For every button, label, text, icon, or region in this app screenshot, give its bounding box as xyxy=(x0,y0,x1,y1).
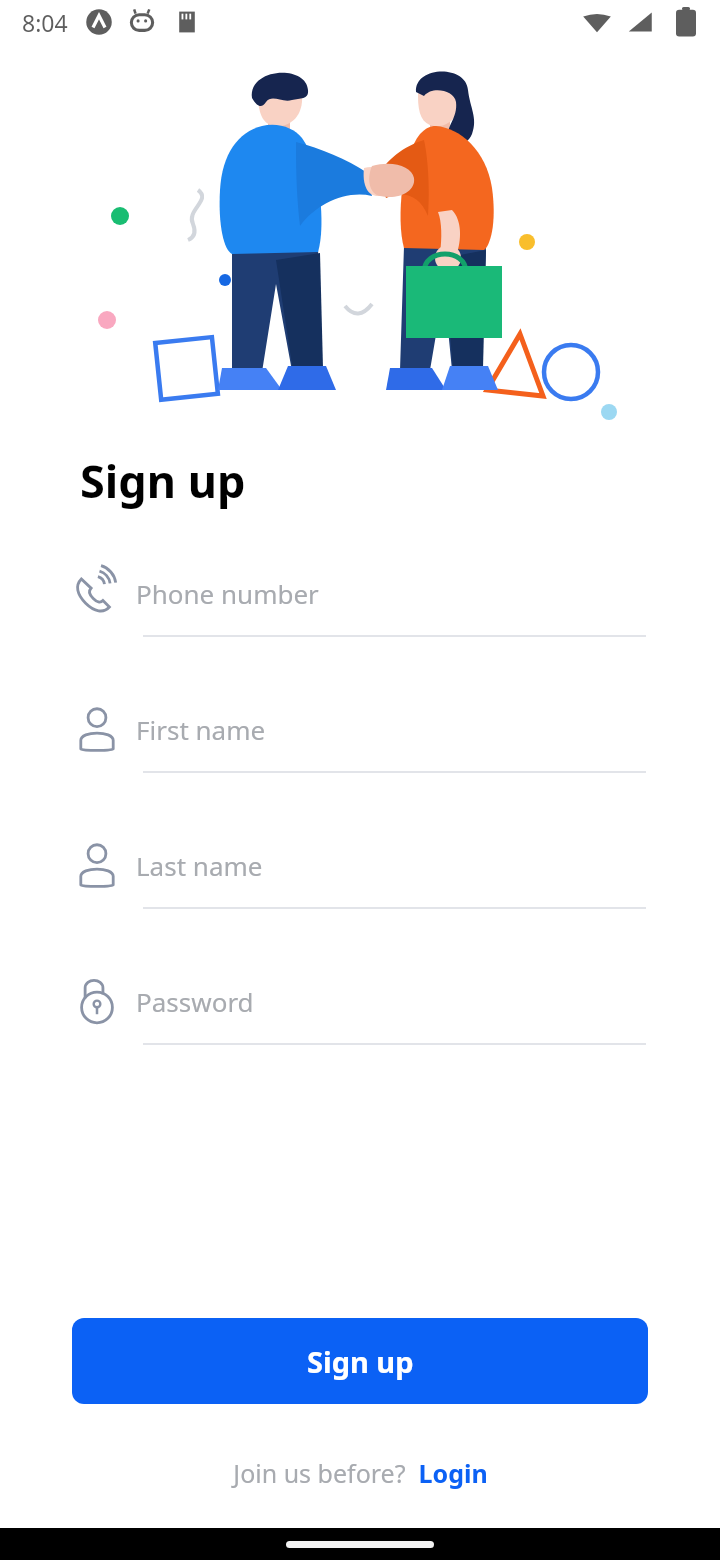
button[interactable]: Join us before? Login xyxy=(0,1456,720,1490)
button[interactable]: Phone number xyxy=(0,563,720,637)
staticText: First name xyxy=(136,712,266,747)
staticText: Phone number xyxy=(136,576,319,611)
other: First name xyxy=(70,702,124,756)
button[interactable]: Sign up xyxy=(72,1318,648,1404)
staticText: Last name xyxy=(136,848,263,883)
other: Last name xyxy=(70,838,124,892)
staticText: Sign up xyxy=(80,450,246,511)
staticText: Sign up xyxy=(307,1342,414,1381)
staticText: 8:04 xyxy=(22,7,68,38)
button[interactable]: First name xyxy=(0,699,720,773)
other: Password xyxy=(70,974,124,1028)
other: Phone number xyxy=(70,566,124,620)
staticText: Password xyxy=(136,984,254,1019)
button[interactable]: Last name xyxy=(0,835,720,909)
button[interactable]: Password xyxy=(0,971,720,1045)
staticText: Join us before? Login xyxy=(233,1456,488,1490)
